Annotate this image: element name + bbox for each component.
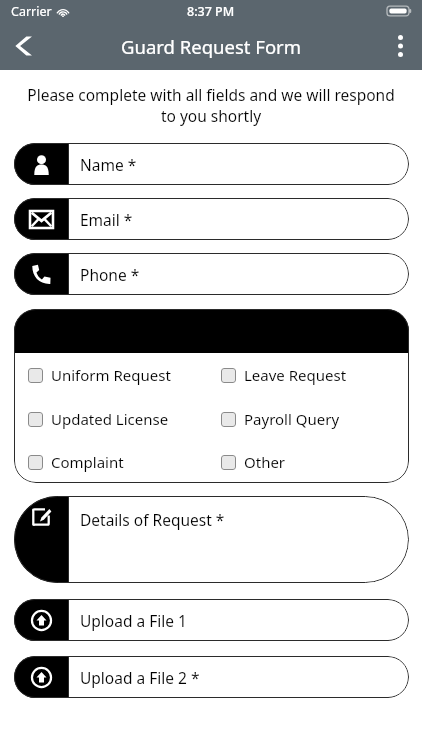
staticText: Updated License xyxy=(51,409,169,429)
staticText: Payroll Query xyxy=(244,409,340,429)
staticText: Email * xyxy=(80,209,133,230)
button[interactable]: Other xyxy=(221,452,286,472)
staticText: Uniform Request xyxy=(51,365,171,385)
staticText: Complaint xyxy=(51,452,124,472)
staticText: 8:37 PM xyxy=(187,3,235,20)
button[interactable]: Name * xyxy=(14,143,409,185)
button[interactable]: More options xyxy=(378,22,422,70)
staticText: Upload a File 1 xyxy=(80,610,187,631)
staticText: Name * xyxy=(80,154,137,175)
staticText: Please complete with all fields and we w… xyxy=(20,84,402,127)
staticText: Leave Request xyxy=(244,365,347,385)
staticText: Guard Request Form xyxy=(121,34,302,59)
staticText: Carrier xyxy=(11,3,52,20)
staticText: Other xyxy=(244,452,286,472)
staticText: Upload a File 2 * xyxy=(80,667,200,688)
button[interactable]: Leave Request xyxy=(221,365,347,385)
button[interactable]: Details of Request * xyxy=(14,496,409,583)
button[interactable]: Updated License xyxy=(28,409,208,429)
button[interactable]: Upload a File 1 xyxy=(14,599,409,641)
button[interactable]: Upload a File 2 * xyxy=(14,656,409,698)
button[interactable]: Phone * xyxy=(14,253,409,295)
button[interactable]: Back xyxy=(0,22,46,70)
staticText: Phone * xyxy=(80,264,140,285)
button[interactable]: Complaint xyxy=(28,452,208,472)
staticText: Details of Request * xyxy=(80,509,225,530)
button[interactable]: Uniform Request xyxy=(28,365,208,385)
button[interactable]: Email * xyxy=(14,198,409,240)
button[interactable]: Payroll Query xyxy=(221,409,340,429)
